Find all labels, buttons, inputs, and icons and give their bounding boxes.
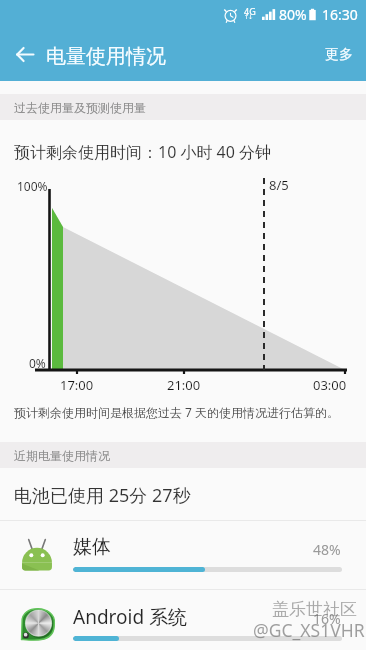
- staticText: 17:00: [60, 376, 94, 394]
- button[interactable]: 媒体: [0, 521, 366, 589]
- staticText: 16:30: [322, 5, 358, 24]
- staticText: 0%: [29, 355, 46, 371]
- staticText: Android 系统: [73, 604, 188, 630]
- staticText: 4G: [244, 5, 256, 17]
- staticText: 48%: [313, 540, 341, 559]
- staticText: 更多: [325, 46, 353, 64]
- button[interactable]: Back: [2, 28, 48, 81]
- staticText: 21:00: [167, 376, 201, 394]
- staticText: 8/5: [269, 176, 289, 194]
- button[interactable]: Android 系统: [0, 590, 366, 650]
- staticText: 电量使用情况: [46, 44, 166, 69]
- staticText: 近期电量使用情况: [14, 448, 110, 463]
- staticText: 03:00: [313, 376, 347, 394]
- button[interactable]: 更多: [309, 30, 366, 80]
- staticText: 16%: [313, 609, 341, 628]
- staticText: 100%: [17, 178, 48, 194]
- staticText: 过去使用量及预测使用量: [14, 100, 146, 115]
- staticText: 电池已使用 25分 27秒: [14, 483, 191, 508]
- staticText: 预计剩余使用时间：10 小时 40 分钟: [14, 141, 272, 163]
- staticText: @GC_XS1VHRR: [253, 618, 366, 642]
- staticText: 预计剩余使用时间是根据您过去 7 天的使用情况进行估算的。: [14, 404, 340, 420]
- staticText: 80%: [279, 5, 307, 24]
- staticText: 媒体: [73, 535, 111, 559]
- staticText: 盖乐世社区: [272, 599, 357, 620]
